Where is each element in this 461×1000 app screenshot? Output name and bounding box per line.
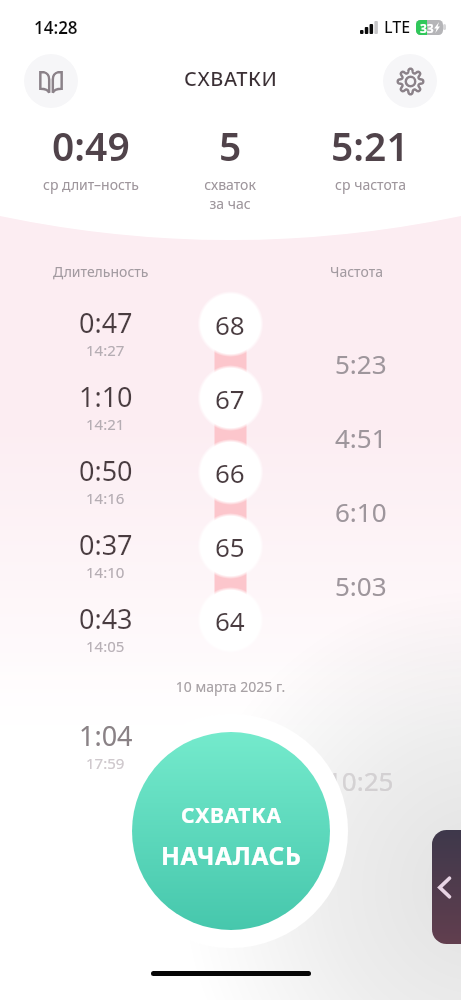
staticText: 0:43 — [79, 600, 133, 637]
staticText: 14:28 — [34, 16, 78, 39]
staticText: 68 — [215, 307, 245, 342]
staticText: 5:03 — [335, 568, 387, 603]
button[interactable]: 66 — [201, 443, 259, 501]
button[interactable]: 67 — [201, 369, 259, 427]
staticText: 6:10 — [335, 494, 387, 529]
staticText: Длительность — [53, 262, 149, 281]
staticText: 14:05 — [86, 636, 125, 656]
button[interactable]: Open side panel — [432, 830, 461, 944]
button[interactable]: 68 — [201, 295, 259, 353]
staticText: ср частота — [335, 175, 406, 194]
staticText: 10 марта 2025 г. — [0, 677, 461, 696]
staticText: Частота — [330, 262, 383, 281]
staticText: ср длит–ность — [43, 175, 139, 194]
staticText: СХВАТКА — [181, 801, 282, 830]
staticText: 64 — [215, 603, 245, 638]
button[interactable]: 65 — [201, 517, 259, 575]
staticText: 5 — [219, 119, 242, 172]
button[interactable]: Guide — [24, 54, 78, 108]
staticText: LTE — [384, 16, 411, 38]
staticText: 5:21 — [331, 119, 409, 172]
staticText: 14:16 — [86, 488, 125, 508]
staticText: 33 — [420, 20, 434, 35]
staticText: СХВАТКИ — [184, 65, 278, 92]
staticText: 0:49 — [52, 119, 130, 172]
staticText: 1:04 — [79, 717, 133, 754]
button[interactable]: 64 — [201, 591, 259, 649]
staticText: 17:59 — [86, 753, 125, 773]
staticText: 14:27 — [86, 340, 125, 360]
staticText: 5:23 — [335, 346, 387, 381]
staticText: 10:25 — [327, 763, 394, 798]
staticText: 66 — [215, 455, 245, 490]
button[interactable]: СХВАТКА — [132, 732, 330, 930]
staticText: 0:37 — [79, 526, 133, 563]
staticText: 1:10 — [79, 378, 133, 415]
staticText: схваток за час — [204, 175, 256, 213]
staticText: 0:50 — [79, 452, 133, 489]
button[interactable]: Settings — [383, 54, 437, 108]
staticText: 14:21 — [86, 414, 125, 434]
staticText: 67 — [215, 381, 245, 416]
staticText: 0:47 — [79, 304, 133, 341]
staticText: 4:51 — [335, 420, 387, 455]
staticText: НАЧАЛАСЬ — [161, 839, 302, 872]
staticText: 14:10 — [86, 562, 125, 582]
staticText: 65 — [215, 529, 245, 564]
